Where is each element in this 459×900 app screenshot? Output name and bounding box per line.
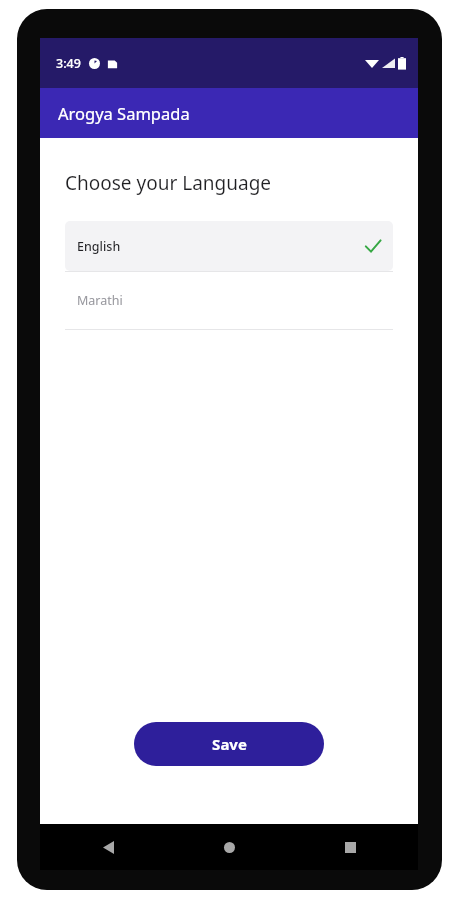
staticText: Arogya Sampada [58,102,190,124]
button[interactable]: English [65,221,393,271]
staticText: 3:49 [56,55,81,72]
other: Selected [363,236,383,256]
staticText: Marathi [77,292,123,309]
staticText: Choose your Language [65,170,272,196]
button[interactable]: Back [92,831,124,863]
button[interactable]: Marathi [65,272,393,329]
button[interactable]: Recent apps [334,831,366,863]
button[interactable]: Save [134,722,324,766]
staticText: English [77,238,121,255]
button[interactable]: Home [213,831,245,863]
staticText: Save [212,734,247,754]
